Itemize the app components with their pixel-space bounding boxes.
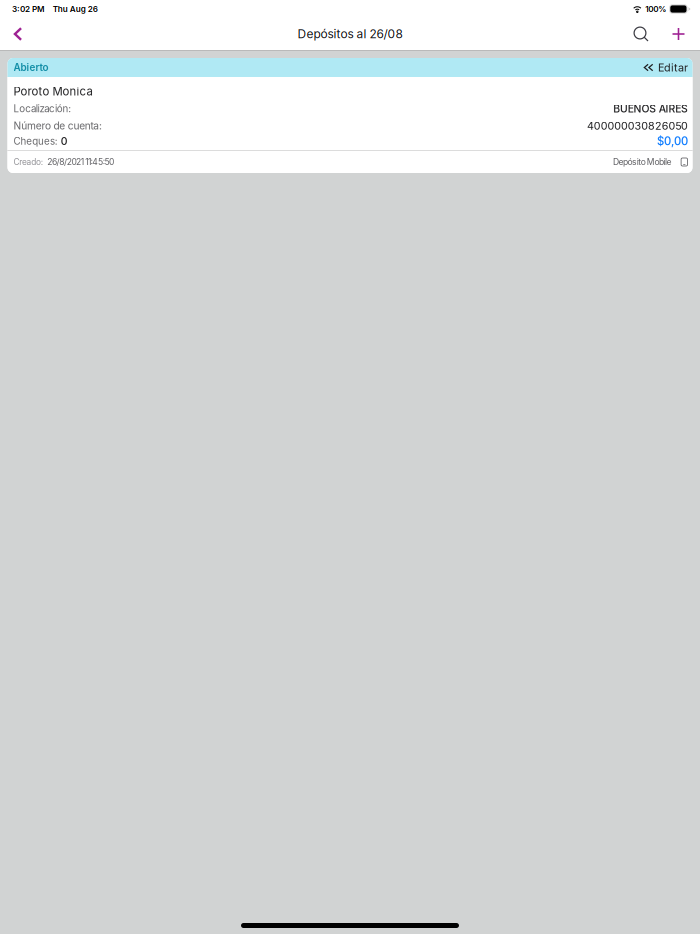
button[interactable]: Editar [643, 58, 688, 77]
button[interactable]: Back [1, 18, 35, 50]
staticText: 26/8/2021 11:45:50 [47, 157, 114, 167]
staticText: BUENOS AIRES [613, 102, 688, 115]
staticText: Cheques: [13, 135, 58, 147]
staticText: 400000030826050 [587, 119, 688, 132]
staticText: 0 [61, 135, 68, 148]
staticText: Número de cuenta: [13, 120, 102, 132]
staticText: 3:02 PM [12, 4, 45, 14]
staticText: $0,00 [657, 134, 688, 148]
staticText: Localización: [13, 103, 71, 115]
staticText: 100% [645, 4, 666, 14]
staticText: Depósito Mobile [613, 157, 672, 167]
staticText: Abierto [13, 61, 48, 73]
staticText: Creado: [13, 157, 43, 167]
staticText: Poroto Monica [13, 85, 92, 98]
button[interactable]: Add deposit [662, 18, 695, 50]
staticText: Editar [658, 61, 688, 74]
staticText: Depósitos al 26/08 [297, 27, 402, 41]
button[interactable]: Search [624, 18, 658, 50]
staticText: Thu Aug 26 [53, 4, 98, 14]
